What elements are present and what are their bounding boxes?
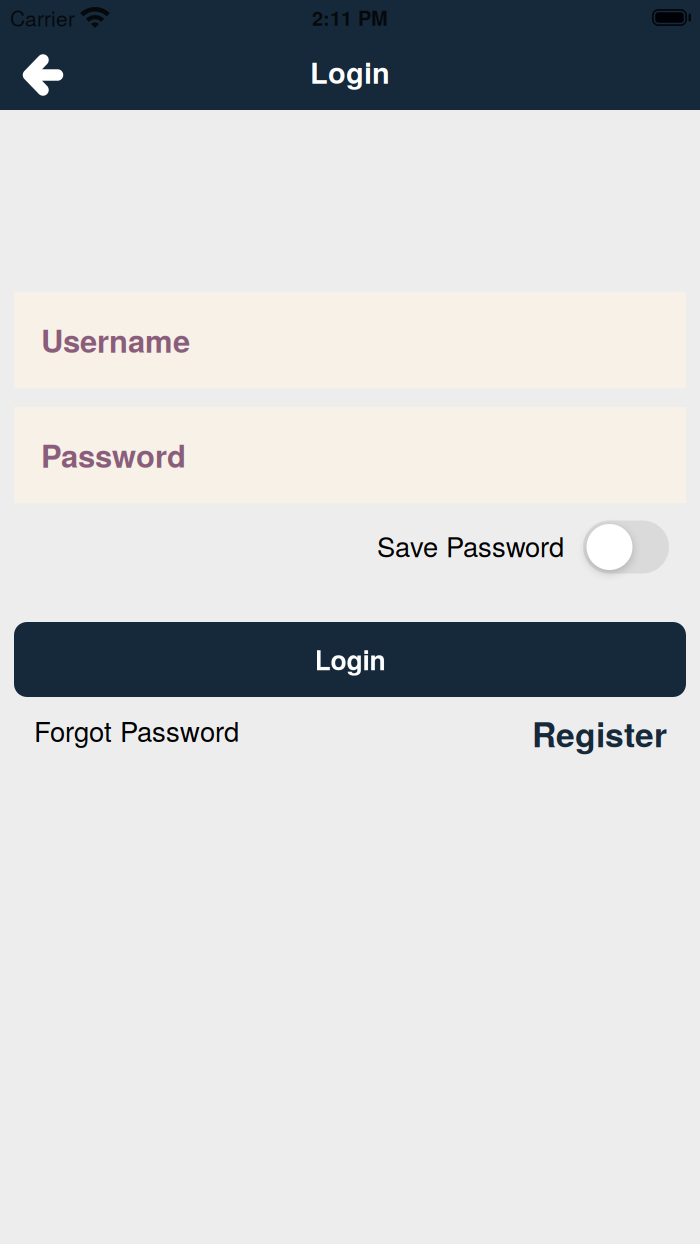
button[interactable] xyxy=(583,520,669,574)
staticText: Register xyxy=(532,709,667,758)
staticText: Carrier xyxy=(10,2,75,33)
button[interactable]: Password xyxy=(0,407,700,503)
button[interactable] xyxy=(22,53,62,97)
staticText: Save Password xyxy=(377,526,564,565)
staticText: Login xyxy=(310,51,390,93)
button[interactable]: Username xyxy=(0,292,700,388)
staticText: Username xyxy=(41,318,190,362)
button[interactable]: Forgot Password xyxy=(34,711,239,751)
staticText: Forgot Password xyxy=(34,710,239,750)
button[interactable]: Login xyxy=(0,622,700,697)
staticText: Login xyxy=(314,640,385,678)
button[interactable]: Register xyxy=(532,707,667,755)
staticText: 2:11 PM xyxy=(312,3,388,32)
staticText: Password xyxy=(41,433,186,477)
